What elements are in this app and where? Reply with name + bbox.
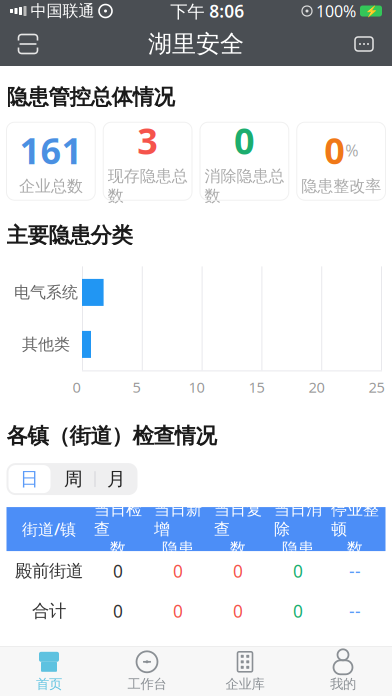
staticText: 隐患: [282, 539, 314, 559]
staticText: 日: [20, 468, 39, 490]
staticText: 当日复查: [214, 500, 262, 539]
staticText: 隐患管控总体情况: [6, 84, 174, 110]
staticText: 湖里安全: [148, 29, 244, 59]
staticText: 隐患: [162, 539, 194, 559]
button[interactable]: 首页: [0, 647, 98, 696]
staticText: 首页: [36, 676, 62, 692]
staticText: 各镇（街道）检查情况: [6, 423, 216, 449]
staticText: 主要隐患分类: [6, 222, 132, 248]
staticText: 161: [19, 126, 82, 174]
staticText: %: [345, 140, 358, 161]
staticText: 0: [234, 117, 255, 164]
button[interactable]: 消息: [342, 22, 386, 66]
staticText: 0: [233, 560, 243, 583]
staticText: --: [349, 600, 361, 623]
staticText: 中国联通: [30, 1, 94, 21]
staticText: 100%: [316, 0, 356, 22]
staticText: 数: [347, 539, 363, 559]
staticText: 街道/镇: [22, 518, 76, 540]
staticText: ⚡: [364, 5, 377, 17]
button[interactable]: 日: [6, 463, 52, 495]
staticText: 停业整顿: [331, 500, 379, 539]
staticText: 0: [113, 600, 123, 623]
staticText: 合计: [32, 600, 66, 622]
staticText: 5: [132, 377, 140, 397]
staticText: 殿前街道: [15, 560, 83, 582]
staticText: 其他类: [22, 335, 70, 354]
staticText: 0: [233, 600, 243, 623]
staticText: 当日消除: [274, 500, 322, 539]
button[interactable]: 我的: [294, 647, 392, 696]
button[interactable]: 周: [52, 463, 94, 495]
staticText: 电气系统: [14, 283, 78, 302]
staticText: 当日检查: [94, 500, 142, 539]
staticText: 消除隐患总数: [204, 166, 284, 206]
staticText: 企业总数: [19, 176, 83, 196]
staticText: 10: [188, 377, 204, 397]
button[interactable]: 扫一扫: [6, 22, 50, 66]
staticText: 0: [173, 560, 183, 583]
staticText: 我的: [330, 676, 356, 692]
staticText: 0: [293, 560, 303, 583]
staticText: 0: [113, 560, 123, 583]
staticText: 3: [137, 117, 158, 164]
staticText: 0: [324, 126, 345, 174]
staticText: --: [349, 560, 361, 583]
staticText: 周: [64, 468, 83, 490]
staticText: 现存隐患总数: [108, 166, 188, 206]
staticText: 数: [110, 539, 126, 559]
staticText: 数: [230, 539, 246, 559]
staticText: 20: [308, 377, 324, 397]
staticText: 当日新增: [154, 500, 202, 539]
button[interactable]: 企业库: [196, 647, 294, 696]
staticText: 下午 8:06: [170, 0, 244, 22]
staticText: 25: [368, 377, 384, 397]
staticText: 企业库: [225, 676, 264, 692]
staticText: 15: [248, 377, 264, 397]
staticText: 0: [293, 600, 303, 623]
staticText: 0: [72, 377, 80, 397]
button[interactable]: 工作台: [98, 647, 196, 696]
staticText: 隐患整改率: [301, 176, 381, 196]
staticText: 月: [107, 468, 126, 490]
staticText: 0: [173, 600, 183, 623]
button[interactable]: 月: [95, 463, 137, 495]
staticText: 工作台: [127, 676, 166, 692]
